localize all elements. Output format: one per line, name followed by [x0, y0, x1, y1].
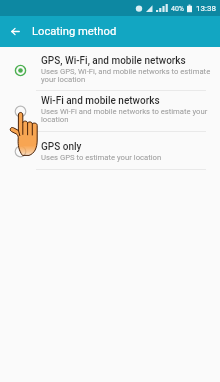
staticText: Wi-Fi and mobile networks	[41, 95, 160, 107]
staticText: 40%	[171, 5, 184, 13]
staticText: Uses Wi-Fi and mobile networks to estima…	[41, 107, 212, 124]
button[interactable]	[0, 47, 220, 90]
staticText: GPS only	[41, 141, 82, 153]
button[interactable]	[0, 132, 220, 169]
staticText: 13:38	[196, 4, 216, 13]
staticText: Locating method	[32, 25, 117, 38]
button[interactable]: Navigate up	[5, 21, 26, 42]
staticText: Uses GPS to estimate your location	[41, 153, 162, 162]
button[interactable]	[0, 91, 220, 131]
staticText: GPS, Wi-Fi, and mobile networks	[41, 55, 186, 67]
staticText: Uses GPS, Wi-Fi, and mobile networks to …	[41, 67, 212, 84]
